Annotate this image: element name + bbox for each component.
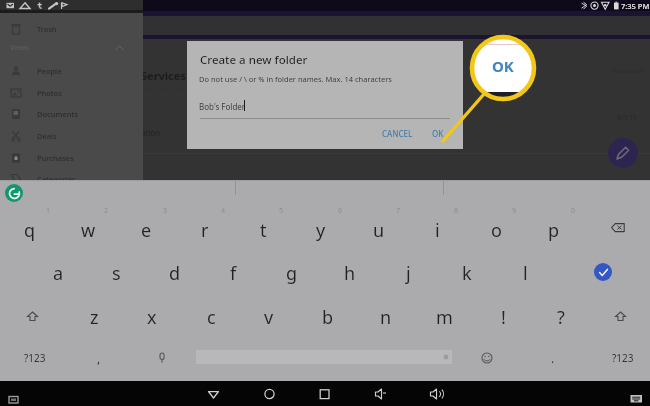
- button[interactable]: OK: [425, 123, 451, 143]
- button[interactable]: p: [529, 211, 579, 249]
- staticText: e: [141, 218, 152, 243]
- staticText: OK: [492, 56, 514, 76]
- button[interactable]: g: [267, 254, 317, 292]
- staticText: j: [406, 261, 411, 286]
- button[interactable]: Home: [257, 381, 281, 406]
- staticText: Purchases: [37, 153, 74, 163]
- button[interactable]: o: [471, 211, 521, 249]
- button[interactable]: n: [361, 298, 411, 336]
- button[interactable]: c: [186, 298, 236, 336]
- button[interactable]: w: [63, 211, 113, 249]
- button[interactable]: Volume down: [368, 381, 392, 406]
- staticText: 9: [512, 206, 517, 216]
- staticText: 3: [163, 206, 168, 216]
- button[interactable]: i: [412, 211, 462, 249]
- button[interactable]: s: [91, 254, 141, 292]
- staticText: s: [112, 261, 121, 286]
- staticText: k: [462, 261, 472, 286]
- staticText: 7: [396, 206, 401, 216]
- button[interactable]: b: [303, 298, 353, 336]
- button[interactable]: q: [5, 211, 55, 249]
- button[interactable]: Recents: [312, 381, 336, 406]
- button[interactable]: Grammarly: [5, 184, 23, 202]
- staticText: 1 results218 v: [141, 138, 187, 148]
- staticText: ?: [557, 305, 565, 330]
- button[interactable]: ?123: [12, 344, 57, 372]
- button[interactable]: People: [0, 60, 143, 81]
- button[interactable]: Hide keyboard: [6, 392, 21, 400]
- button[interactable]: m: [419, 298, 469, 336]
- staticText: 5: [279, 206, 284, 216]
- staticText: h: [344, 261, 356, 286]
- staticText: Create a new folder: [200, 52, 308, 68]
- staticText: v: [264, 305, 274, 330]
- button[interactable]: ?123: [600, 344, 645, 372]
- staticText: 7:35 PM: [621, 1, 650, 11]
- button[interactable]: ?: [536, 298, 586, 336]
- staticText: Views: [10, 43, 29, 53]
- button[interactable]: f: [208, 254, 258, 292]
- staticText: ?123: [612, 351, 634, 365]
- staticText: Photos: [37, 88, 62, 98]
- staticText: .: [551, 350, 555, 366]
- staticText: ,: [97, 350, 101, 366]
- button[interactable]: Emoji: [470, 344, 504, 372]
- button[interactable]: Enter: [594, 263, 612, 281]
- button[interactable]: d: [150, 254, 200, 292]
- staticText: CANCEL: [382, 128, 413, 139]
- button[interactable]: Volume up: [424, 381, 448, 406]
- button[interactable]: Shift: [610, 306, 630, 326]
- button[interactable]: r: [180, 211, 230, 249]
- staticText: 4: [221, 206, 226, 216]
- staticText: a: [53, 261, 64, 286]
- staticText: 8: [454, 206, 459, 216]
- button[interactable]: t: [238, 211, 288, 249]
- staticText: d: [169, 261, 181, 286]
- staticText: c: [207, 305, 216, 330]
- button[interactable]: Compose: [608, 138, 638, 168]
- button[interactable]: Documents: [0, 103, 143, 124]
- button[interactable]: x: [127, 298, 177, 336]
- staticText: p: [548, 218, 560, 243]
- button[interactable]: CANCEL: [375, 123, 419, 143]
- staticText: u: [373, 218, 385, 243]
- staticText: Services: [141, 68, 186, 83]
- staticText: Categories: [37, 174, 76, 184]
- staticText: n: [380, 305, 392, 330]
- staticText: ants from 3 a: [141, 91, 185, 101]
- button[interactable]: ,: [80, 344, 118, 372]
- button[interactable]: e: [121, 211, 171, 249]
- button[interactable]: Voice input: [145, 344, 179, 372]
- button[interactable]: l: [500, 254, 550, 292]
- button[interactable]: Switch keyboard: [630, 394, 643, 403]
- button[interactable]: a: [33, 254, 83, 292]
- button[interactable]: j: [383, 254, 433, 292]
- staticText: z: [90, 305, 99, 330]
- button[interactable]: Photos: [0, 82, 143, 103]
- button[interactable]: Purchases: [0, 147, 143, 168]
- button[interactable]: v: [244, 298, 294, 336]
- button[interactable]: Shift: [22, 306, 42, 326]
- staticText: ?123: [24, 351, 46, 365]
- button[interactable]: Back: [201, 381, 225, 406]
- button[interactable]: k: [442, 254, 492, 292]
- staticText: Deals: [37, 131, 57, 141]
- button[interactable]: .: [536, 344, 570, 372]
- button[interactable]: Backspace: [601, 211, 635, 243]
- button[interactable]: h: [325, 254, 375, 292]
- staticText: b: [322, 305, 334, 330]
- button[interactable]: Categories: [0, 168, 143, 189]
- staticText: OK: [432, 128, 444, 139]
- staticText: Do not use / \ or % in folder names. Max…: [199, 74, 392, 84]
- button[interactable]: y: [296, 211, 346, 249]
- button[interactable]: z: [69, 298, 119, 336]
- staticText: l: [523, 261, 528, 286]
- staticText: q: [24, 218, 36, 243]
- button[interactable]: u: [354, 211, 404, 249]
- staticText: f: [230, 261, 237, 286]
- button[interactable]: !: [478, 298, 528, 336]
